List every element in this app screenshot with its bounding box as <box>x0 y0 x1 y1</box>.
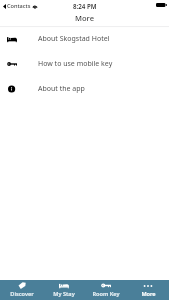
button[interactable]: More <box>127 280 169 300</box>
button[interactable]: About Skogstad Hotel <box>0 26 169 51</box>
staticText: About the app <box>38 84 85 94</box>
staticText: More <box>75 13 95 23</box>
staticText: How to use mobile key <box>38 59 113 69</box>
staticText: My Stay <box>53 290 75 298</box>
button[interactable]: How to use mobile key <box>0 51 169 76</box>
staticText: About Skogstad Hotel <box>38 34 110 44</box>
button[interactable]: My Stay <box>43 280 85 300</box>
staticText: Room Key <box>92 290 120 298</box>
button[interactable]: Room Key <box>85 280 127 300</box>
staticText: More <box>141 290 156 298</box>
button[interactable]: Discover <box>0 280 43 300</box>
staticText: Contacts <box>7 2 31 10</box>
staticText: Discover <box>10 290 34 298</box>
staticText: 8:24 PM <box>73 2 97 10</box>
button[interactable]: About the app <box>0 76 169 101</box>
